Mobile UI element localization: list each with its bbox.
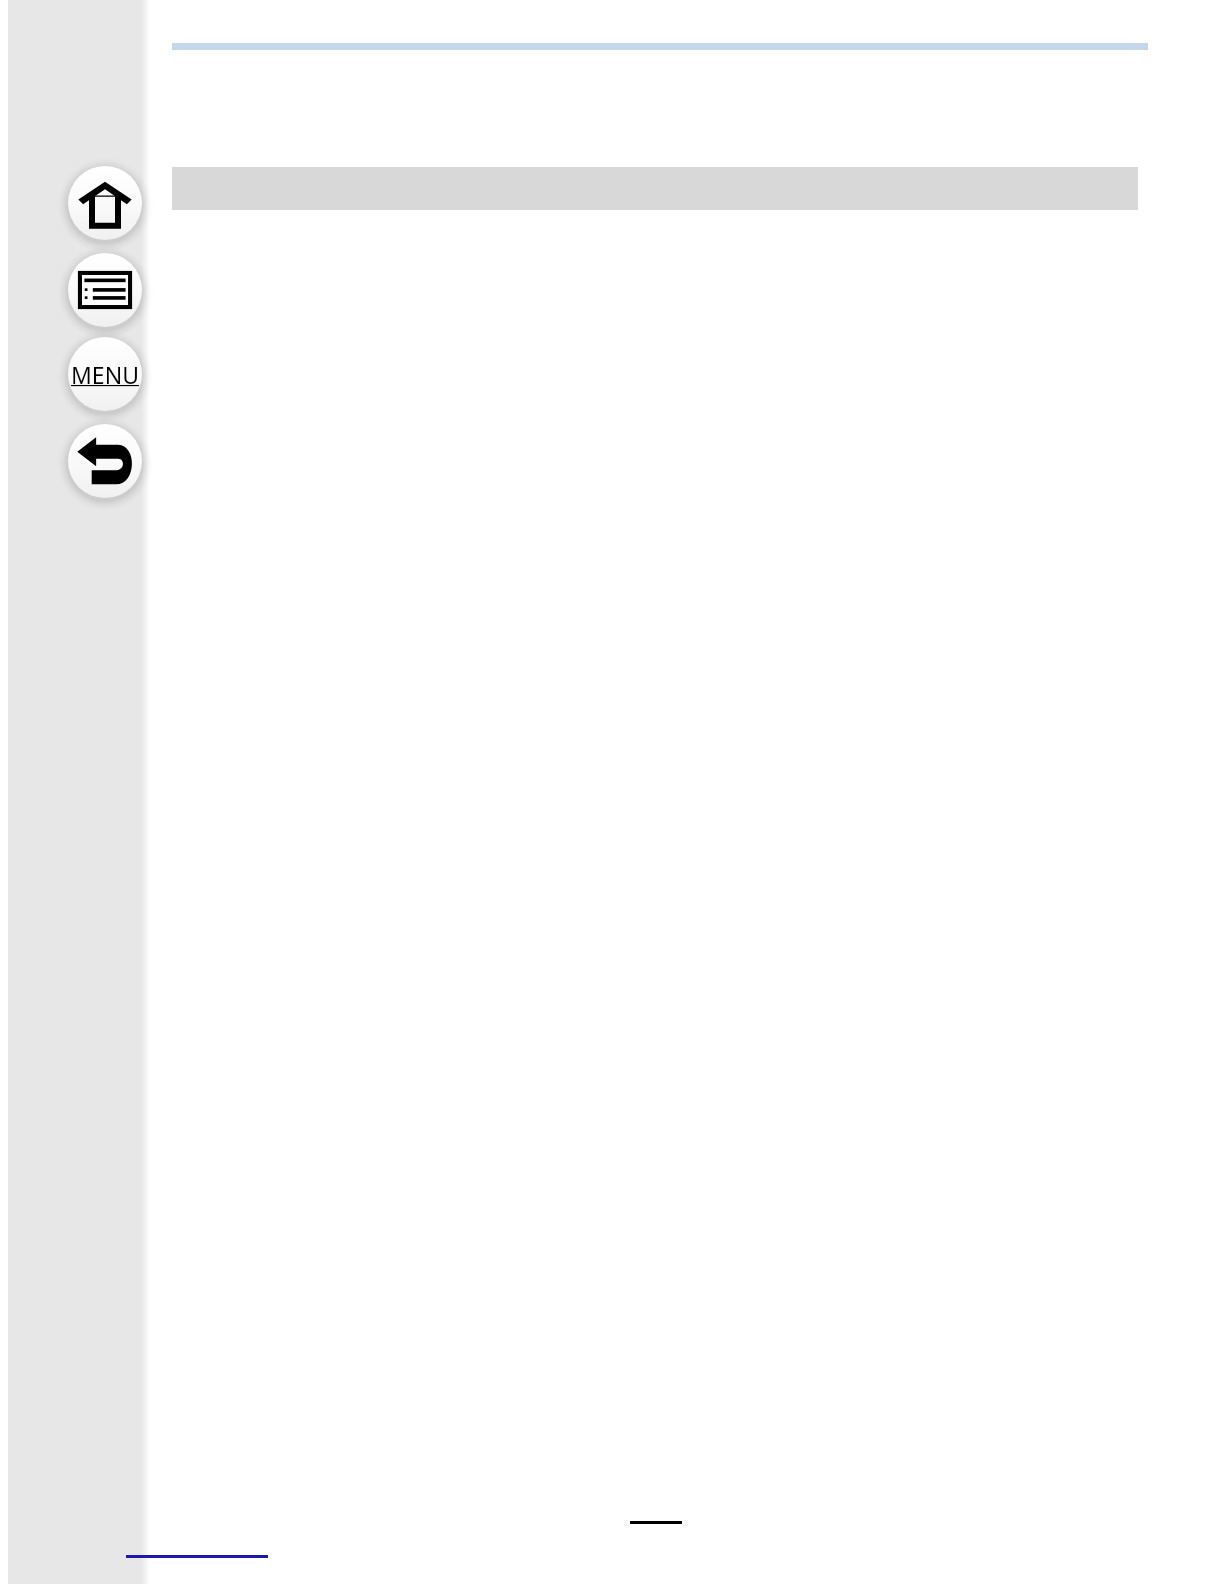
button[interactable]: Menu [56, 325, 154, 423]
staticText: MENU [71, 359, 139, 390]
button[interactable]: Table of contents [56, 241, 154, 339]
button[interactable]: Back [56, 412, 154, 510]
button[interactable]: Home [56, 154, 154, 252]
